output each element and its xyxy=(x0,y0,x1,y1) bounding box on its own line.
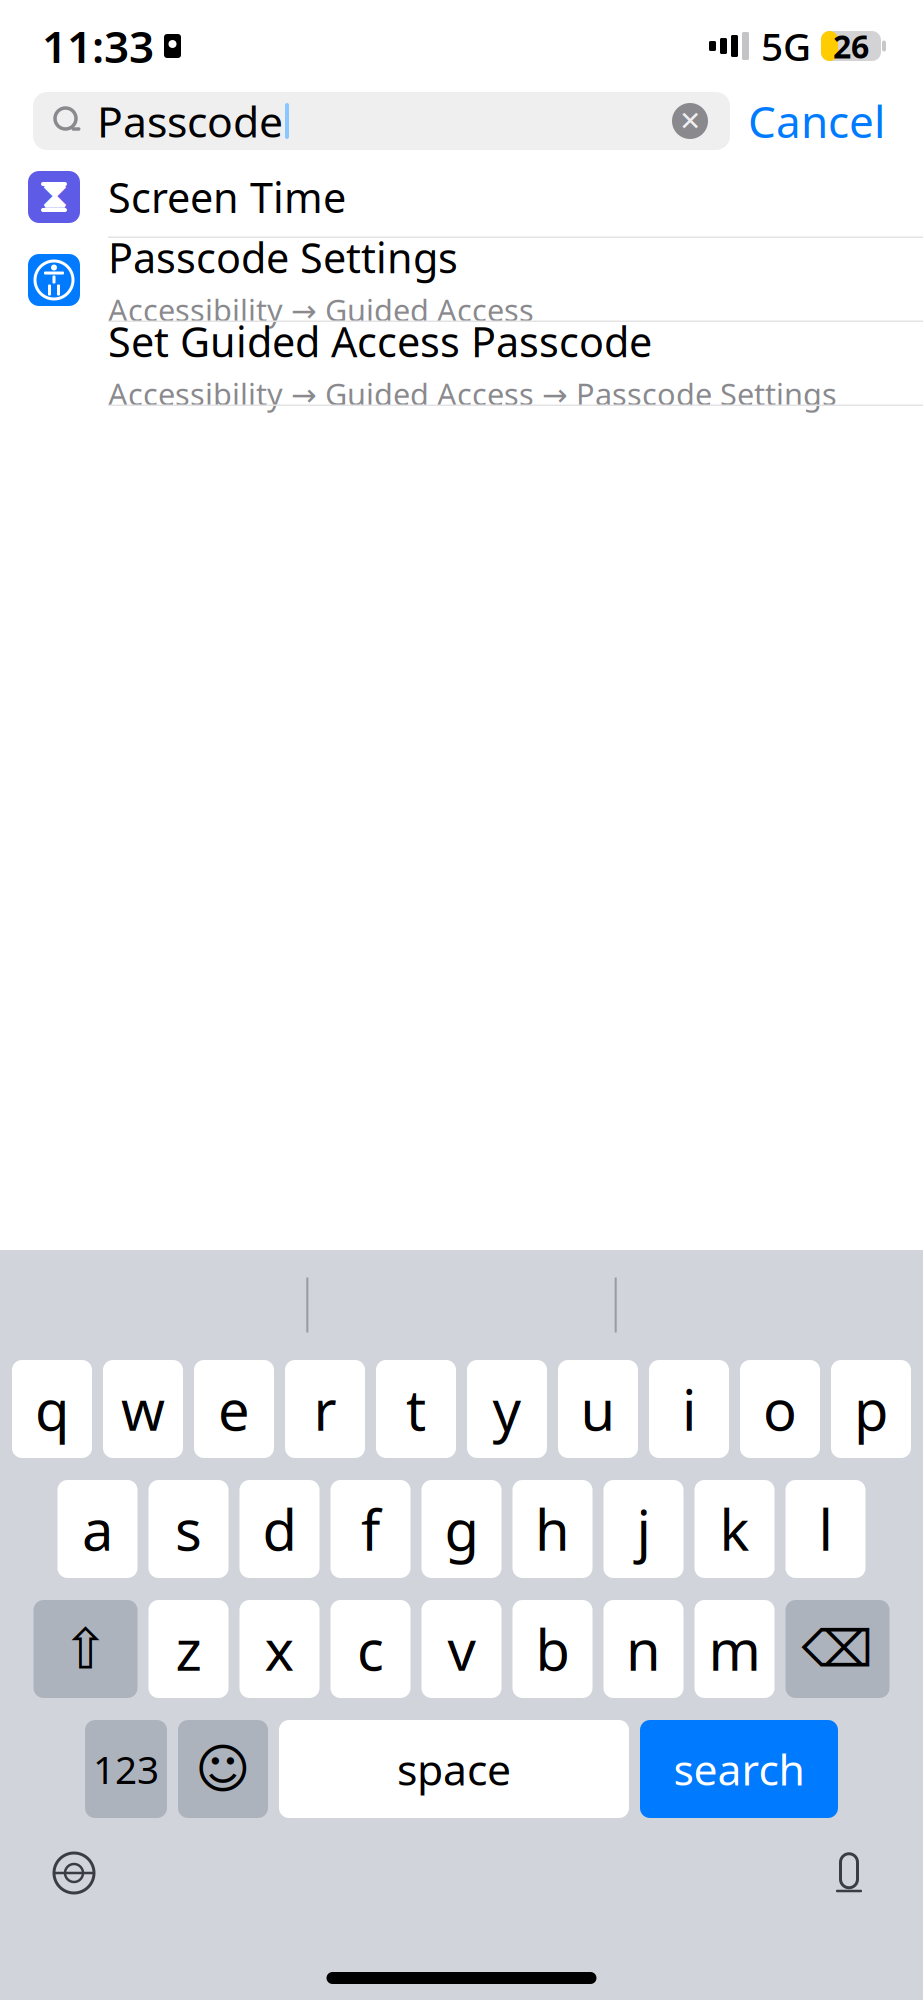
button[interactable]: p xyxy=(831,1360,911,1458)
staticText: e xyxy=(218,1372,250,1446)
button[interactable]: Next keyboard xyxy=(42,1841,106,1905)
staticText: 123 xyxy=(93,1743,159,1795)
staticText: l xyxy=(818,1492,832,1566)
button[interactable]: y xyxy=(467,1360,547,1458)
staticText: x xyxy=(264,1612,294,1686)
staticText: Accessibility → Guided Access → Passcode… xyxy=(108,374,837,414)
staticText: z xyxy=(175,1612,201,1686)
staticText: i xyxy=(682,1372,696,1446)
button[interactable]: Dictation xyxy=(817,1841,881,1905)
button[interactable]: d xyxy=(239,1480,319,1578)
staticText: Passcode xyxy=(97,93,283,149)
staticText: Accessibility → Guided Access xyxy=(108,290,534,330)
staticText: p xyxy=(854,1372,888,1446)
staticText: t xyxy=(406,1372,426,1446)
button[interactable]: b xyxy=(512,1600,592,1698)
staticText: q xyxy=(35,1372,69,1446)
staticText: f xyxy=(361,1492,380,1566)
staticText: b xyxy=(535,1612,569,1686)
button[interactable]: e xyxy=(194,1360,274,1458)
button[interactable]: Clear text xyxy=(662,93,718,149)
button[interactable]: v xyxy=(421,1600,501,1698)
button[interactable]: o xyxy=(740,1360,820,1458)
staticText: a xyxy=(82,1492,113,1566)
staticText: w xyxy=(121,1372,165,1446)
staticText: m xyxy=(708,1612,760,1686)
staticText: r xyxy=(313,1372,336,1446)
button[interactable]: r xyxy=(285,1360,365,1458)
button[interactable]: ⧗ xyxy=(0,156,923,238)
button[interactable]: Cancel xyxy=(730,92,903,150)
button[interactable]: z xyxy=(148,1600,228,1698)
staticText: j xyxy=(636,1492,650,1566)
button[interactable]: Delete xyxy=(785,1600,889,1698)
button[interactable]: m xyxy=(694,1600,774,1698)
button[interactable]: Emoji xyxy=(178,1720,268,1818)
staticText: v xyxy=(447,1612,475,1686)
staticText: n xyxy=(626,1612,661,1686)
button[interactable]: a xyxy=(57,1480,137,1578)
staticText: Screen Time xyxy=(108,170,346,224)
staticText: 5G xyxy=(761,20,811,72)
button[interactable]: h xyxy=(512,1480,592,1578)
staticText: o xyxy=(763,1372,797,1446)
button[interactable]: c xyxy=(330,1600,410,1698)
staticText: search xyxy=(673,1741,804,1797)
staticText: Set Guided Access Passcode xyxy=(108,314,652,369)
button[interactable]: l xyxy=(785,1480,865,1578)
button[interactable]: u xyxy=(558,1360,638,1458)
button[interactable]: f xyxy=(330,1480,410,1578)
button[interactable]: s xyxy=(148,1480,228,1578)
staticText: 26 xyxy=(833,25,869,67)
button[interactable]: n xyxy=(603,1600,683,1698)
staticText: ⧗ xyxy=(41,179,66,214)
button[interactable]: x xyxy=(239,1600,319,1698)
button[interactable]: space xyxy=(279,1720,629,1818)
staticText: y xyxy=(492,1372,521,1446)
button[interactable]: search xyxy=(640,1720,838,1818)
staticText: 11:33 xyxy=(42,17,154,75)
button[interactable]: q xyxy=(12,1360,92,1458)
button[interactable]: i xyxy=(649,1360,729,1458)
button[interactable]: Passcode Settings xyxy=(0,238,923,322)
staticText: Passcode Settings xyxy=(108,230,458,285)
staticText: u xyxy=(580,1372,615,1446)
button[interactable]: j xyxy=(603,1480,683,1578)
staticText: ⇧ xyxy=(62,1617,109,1681)
staticText: Cancel xyxy=(748,92,885,150)
button[interactable]: g xyxy=(421,1480,501,1578)
staticText: s xyxy=(175,1492,202,1566)
button[interactable]: w xyxy=(103,1360,183,1458)
staticText: k xyxy=(719,1492,749,1566)
staticText: h xyxy=(535,1492,570,1566)
staticText: ✕ xyxy=(679,106,701,136)
button[interactable]: t xyxy=(376,1360,456,1458)
staticText: c xyxy=(357,1612,384,1686)
button[interactable]: k xyxy=(694,1480,774,1578)
button[interactable]: Shift xyxy=(33,1600,137,1698)
staticText: ⌫ xyxy=(801,1620,873,1678)
button[interactable]: 123 xyxy=(85,1720,167,1818)
staticText: g xyxy=(444,1492,478,1566)
staticText: d xyxy=(262,1492,296,1566)
button[interactable]: Set Guided Access Passcode xyxy=(0,322,923,406)
staticText: ☺ xyxy=(195,1739,251,1799)
staticText: space xyxy=(397,1741,511,1797)
